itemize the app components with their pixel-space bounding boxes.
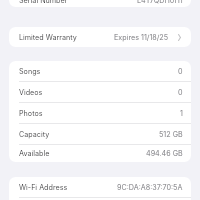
staticText: 494.46 GB bbox=[146, 149, 183, 158]
button[interactable]: Videos bbox=[9, 82, 191, 102]
staticText: L4T7QDH0H1 bbox=[137, 0, 183, 5]
button[interactable]: Capacity bbox=[9, 124, 191, 144]
button[interactable]: Limited Warranty bbox=[9, 27, 191, 47]
staticText: Expires 11/18/25 bbox=[114, 33, 169, 42]
button[interactable]: Serial Number bbox=[9, 0, 191, 7]
staticText: Wi-Fi Address bbox=[19, 183, 68, 192]
staticText: Available bbox=[19, 149, 50, 158]
staticText: 0 bbox=[178, 67, 183, 76]
button[interactable]: Songs bbox=[9, 61, 191, 81]
staticText: 9C:DA:A8:37:70:5A bbox=[117, 183, 183, 192]
staticText: Capacity bbox=[19, 130, 50, 139]
other: Open details bbox=[178, 34, 181, 41]
staticText: Songs bbox=[19, 67, 41, 76]
staticText: Photos bbox=[19, 109, 43, 118]
button[interactable]: Wi-Fi Address bbox=[9, 177, 191, 197]
staticText: 1 bbox=[180, 109, 183, 118]
staticText: Videos bbox=[19, 88, 43, 97]
staticText: 0 bbox=[178, 88, 183, 97]
button[interactable]: Photos bbox=[9, 103, 191, 123]
staticText: Serial Number bbox=[19, 0, 68, 5]
button[interactable]: Available bbox=[9, 145, 191, 162]
staticText: 512 GB bbox=[159, 130, 183, 139]
staticText: Limited Warranty bbox=[19, 33, 77, 42]
